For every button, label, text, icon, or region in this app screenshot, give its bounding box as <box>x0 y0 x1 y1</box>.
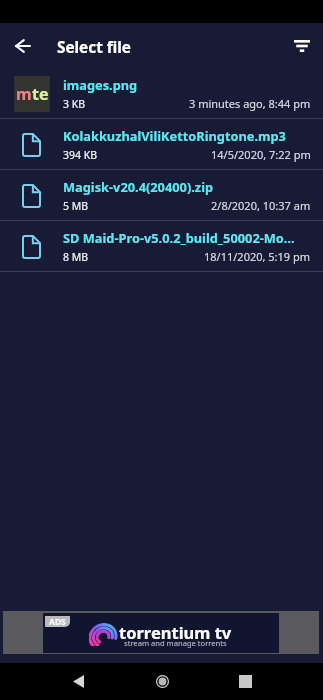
button[interactable]: SD Maid-Pro-v5.0.2_build_50002-Mo… <box>0 221 323 272</box>
button[interactable]: KolakkuzhalViliKettoRingtone.mp3 <box>0 119 323 170</box>
staticText: 3 KB <box>63 97 86 111</box>
staticText: te <box>32 83 49 105</box>
staticText: m <box>16 83 32 105</box>
staticText: ADS <box>49 616 66 627</box>
staticText: 3 minutes ago, 8:44 pm <box>189 96 311 111</box>
staticText: stream and manage torrents <box>124 638 227 648</box>
staticText: 18/11/2020, 5:19 pm <box>204 249 311 264</box>
staticText: 2/8/2020, 10:37 am <box>211 198 311 213</box>
button[interactable]: Back <box>9 32 37 60</box>
staticText: 8 MB <box>63 250 89 264</box>
staticText: 5 MB <box>63 199 89 213</box>
button[interactable]: Filter <box>287 31 317 61</box>
button[interactable]: torrentium tv <box>43 613 279 653</box>
button[interactable]: m <box>0 68 323 119</box>
staticText: 14/5/2020, 7:22 pm <box>211 147 311 162</box>
staticText: 394 KB <box>63 148 98 162</box>
staticText: torrentium tv <box>119 621 232 643</box>
staticText: KolakkuzhalViliKettoRingtone.mp3 <box>63 127 286 144</box>
button[interactable]: Recents <box>223 663 267 700</box>
button[interactable]: Magisk-v20.4(20400).zip <box>0 170 323 221</box>
staticText: Select file <box>57 37 131 58</box>
staticText: Magisk-v20.4(20400).zip <box>63 178 214 195</box>
staticText: images.png <box>63 76 138 93</box>
button[interactable]: Back <box>56 663 100 700</box>
button[interactable]: Home <box>140 663 184 700</box>
staticText: SD Maid-Pro-v5.0.2_build_50002-Mo… <box>63 229 295 246</box>
